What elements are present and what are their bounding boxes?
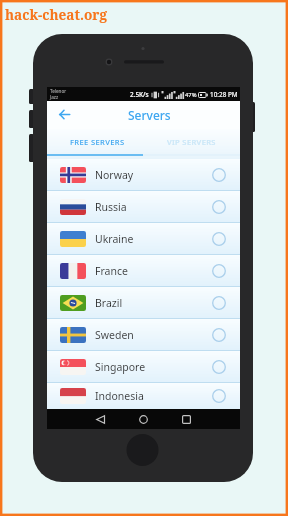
button[interactable]: Recents bbox=[176, 409, 197, 429]
staticText: Sweden bbox=[95, 328, 134, 342]
button[interactable]: Home bbox=[133, 409, 154, 429]
staticText: Brazil bbox=[95, 296, 123, 310]
button[interactable]: France bbox=[47, 255, 240, 286]
staticText: hack-cheat.org bbox=[5, 5, 107, 24]
staticText: 2.5K/s bbox=[130, 90, 149, 99]
staticText: Telenor bbox=[50, 88, 67, 94]
staticText: Jazz bbox=[50, 94, 59, 100]
staticText: Ukraine bbox=[95, 232, 134, 246]
staticText: VIP SERVERS bbox=[167, 137, 216, 147]
button[interactable]: FREE SERVERS bbox=[47, 129, 143, 154]
staticText: France bbox=[95, 264, 128, 278]
staticText: Servers bbox=[128, 107, 171, 123]
button[interactable]: Indonesia bbox=[47, 383, 240, 409]
button[interactable]: Brazil bbox=[47, 287, 240, 318]
button[interactable]: Back bbox=[90, 409, 111, 429]
staticText: 47% bbox=[185, 91, 197, 99]
staticText: Russia bbox=[95, 200, 127, 214]
button[interactable]: Norway bbox=[47, 159, 240, 190]
button[interactable]: VIP SERVERS bbox=[143, 129, 240, 154]
staticText: 10:28 PM bbox=[210, 90, 238, 99]
button[interactable]: Sweden bbox=[47, 319, 240, 350]
button[interactable]: Ukraine bbox=[47, 223, 240, 254]
staticText: Indonesia bbox=[95, 389, 144, 403]
button[interactable]: Russia bbox=[47, 191, 240, 222]
button[interactable]: Singapore bbox=[47, 351, 240, 382]
staticText: FREE SERVERS bbox=[70, 137, 125, 147]
staticText: Singapore bbox=[95, 360, 146, 374]
button[interactable]: Back bbox=[57, 107, 71, 121]
staticText: Norway bbox=[95, 168, 134, 182]
